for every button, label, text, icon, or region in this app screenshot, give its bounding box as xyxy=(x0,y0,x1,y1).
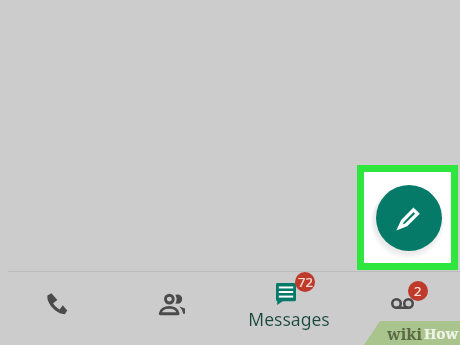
button[interactable]: Contacts xyxy=(134,281,210,327)
button[interactable]: Voicemail xyxy=(368,279,444,325)
staticText: wiki xyxy=(387,323,423,345)
staticText: Messages xyxy=(234,307,344,331)
button[interactable]: Messages xyxy=(234,272,344,330)
staticText: 72 xyxy=(298,273,313,291)
staticText: 2 xyxy=(414,282,422,300)
button[interactable]: Phone xyxy=(19,281,95,327)
button[interactable]: Start new conversation xyxy=(376,185,442,251)
staticText: How xyxy=(424,323,459,343)
